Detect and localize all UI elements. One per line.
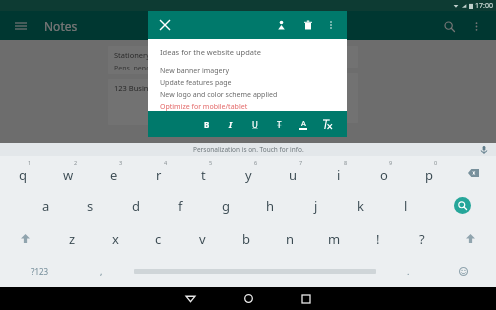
button[interactable]: 2 [46,156,91,189]
staticText: u [289,166,298,184]
button[interactable]: Delete [298,15,318,35]
button[interactable]: 8 [316,156,361,189]
button[interactable]: n [268,222,312,255]
button[interactable]: x [94,222,137,255]
staticText: b [242,230,250,248]
button[interactable]: m [312,222,356,255]
staticText: h [266,197,275,215]
staticText: q [19,166,27,184]
button[interactable]: Share [272,15,292,35]
staticText: j [314,197,318,215]
button[interactable]: Back [173,287,207,310]
button[interactable]: Text color [291,112,315,136]
button[interactable]: More options [466,16,486,36]
staticText: ! [376,230,380,248]
button[interactable]: 0 [406,156,451,189]
button[interactable]: v [180,222,224,255]
button[interactable]: Emoji [430,255,496,287]
staticText: d [132,197,140,215]
staticText: c [155,230,162,248]
button[interactable]: 5 [181,156,226,189]
button[interactable]: Space [123,255,386,287]
staticText: t [201,166,206,184]
staticText: i [337,166,341,184]
button[interactable]: j [293,189,338,222]
staticText: New logo and color scheme applied [160,90,278,100]
staticText: ?123 [31,266,49,277]
button[interactable]: Strikethrough [267,112,291,136]
button[interactable]: Underline [243,112,267,136]
button[interactable]: Search [428,189,496,222]
staticText: 3 [119,159,123,166]
staticText: z [69,230,76,248]
staticText: , [100,265,103,277]
button[interactable]: Stationery [108,46,240,74]
button[interactable]: s [68,189,113,222]
staticText: . [407,265,410,277]
staticText: Personalization is on. Touch for info. [193,145,304,154]
button[interactable]: 4 [136,156,181,189]
staticText: 8 [344,159,348,166]
staticText: Optimize for mobile/tablet [160,102,248,111]
button[interactable]: 123 Business St [108,79,240,125]
button[interactable]: 6 [226,156,271,189]
button[interactable]: h [248,189,293,222]
button[interactable]: b [224,222,268,255]
button[interactable]: c [137,222,180,255]
button[interactable]: a [23,189,68,222]
button[interactable]: f [158,189,203,222]
button[interactable]: ?123 [0,255,79,287]
button[interactable]: d [113,189,158,222]
staticText: 0 [434,159,438,166]
button[interactable]: z [51,222,94,255]
staticText: k [357,197,364,215]
button[interactable]: Shift [444,222,496,255]
staticText: s [87,197,94,215]
staticText: Ideas for the website update [160,47,261,57]
staticText: m [328,230,341,248]
staticText: New banner imagery [160,66,229,76]
button[interactable]: led.. [248,73,358,123]
button[interactable]: Search [438,15,460,37]
button[interactable]: g [203,189,248,222]
staticText: I [229,119,233,130]
button[interactable]: Home [231,287,265,310]
staticText: B [204,119,210,130]
staticText: Pens, pencils, paper [114,64,180,70]
staticText: a [42,197,50,215]
button[interactable]: Italic [219,112,243,136]
staticText: A [301,118,306,128]
staticText: Stationery [114,50,150,60]
staticText: 2 [74,159,78,166]
staticText: l [404,197,408,215]
button[interactable]: 3 [91,156,136,189]
button[interactable]: k [338,189,383,222]
staticText: f [178,197,183,215]
button[interactable]: 9 [361,156,406,189]
button[interactable]: More options [322,16,340,34]
staticText: 4 [164,159,168,166]
button[interactable]: ! [356,222,400,255]
staticText: T [277,119,282,130]
staticText: Update features page [160,78,232,88]
button[interactable]: 7 [271,156,316,189]
button[interactable]: Close [155,15,175,35]
button[interactable]: l [383,189,428,222]
button[interactable]: Recents [289,287,323,310]
button[interactable]: Shift [0,222,51,255]
button[interactable]: Menu [10,15,32,37]
staticText: 9 [389,159,393,166]
staticText: w [63,166,74,184]
button[interactable]: 1 [0,156,46,189]
button[interactable] [248,46,358,68]
button[interactable]: Clear formatting [315,112,339,136]
button[interactable]: Voice input [478,144,490,156]
button[interactable]: Backspace [451,156,496,189]
button[interactable]: Bold [195,112,219,136]
staticText: x [112,230,119,248]
button[interactable]: ? [400,222,444,255]
staticText: 5 [209,159,213,166]
staticText: r [156,166,162,184]
